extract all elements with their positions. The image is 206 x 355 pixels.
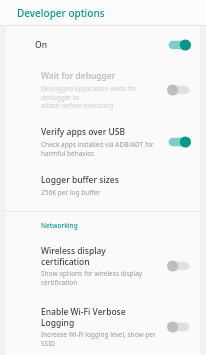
- staticText: Verify apps over USB: [41, 126, 125, 138]
- button[interactable]: Verify apps over USB: [6, 118, 200, 166]
- staticText: Check apps installed via ADB/ADT for har…: [41, 140, 154, 158]
- staticText: Increase Wi-Fi logging level, show per S…: [41, 330, 156, 347]
- button[interactable]: Logger buffer sizes: [6, 166, 200, 205]
- staticText: 256K per log buffer: [41, 188, 101, 197]
- button[interactable]: On: [166, 135, 192, 149]
- staticText: Debugged application waits for debugger …: [41, 84, 156, 110]
- button[interactable]: Wireless display certification: [6, 237, 200, 295]
- staticText: Wait for debugger: [41, 70, 116, 82]
- button[interactable]: On: [6, 32, 200, 58]
- staticText: On: [35, 39, 166, 51]
- button[interactable]: Off: [166, 320, 192, 334]
- staticText: Wireless display certification: [41, 245, 156, 267]
- staticText: Developer options: [17, 6, 105, 20]
- button[interactable]: Enable Wi-Fi Verbose Logging: [6, 298, 200, 355]
- button[interactable]: Off: [166, 83, 192, 97]
- button[interactable]: Wait for debugger: [6, 62, 200, 118]
- staticText: Networking: [41, 221, 78, 230]
- staticText: Enable Wi-Fi Verbose Logging: [41, 306, 156, 328]
- button[interactable]: On: [166, 38, 192, 52]
- staticText: Show options for wireless display certif…: [41, 269, 156, 287]
- staticText: Logger buffer sizes: [41, 174, 119, 186]
- button[interactable]: Off: [166, 259, 192, 273]
